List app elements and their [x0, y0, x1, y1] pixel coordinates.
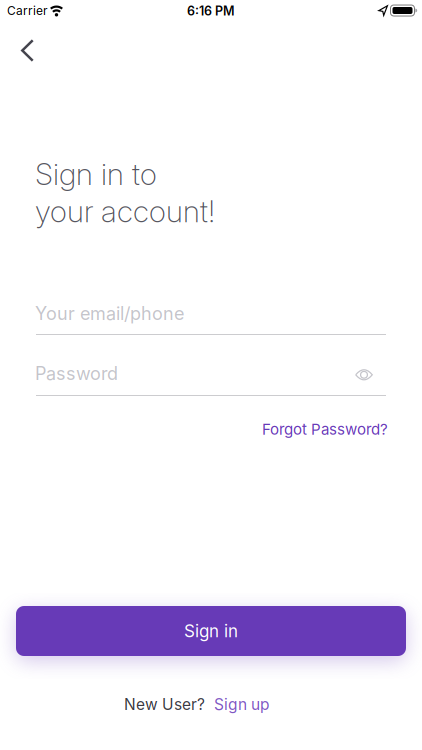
staticText: Sign in [184, 621, 238, 641]
button[interactable]: Back [0, 0, 34, 62]
staticText: 6:16 PM [187, 3, 235, 18]
staticText: Carrier [7, 3, 48, 18]
staticText: your account! [35, 193, 215, 230]
button[interactable]: Show password [355, 368, 373, 382]
staticText: Forgot Password? [262, 420, 388, 438]
staticText: New User? [124, 695, 205, 714]
button[interactable]: Sign up [214, 695, 269, 714]
button[interactable]: Forgot Password? [262, 420, 388, 438]
button[interactable]: Sign in [16, 606, 406, 656]
staticText: Sign in to [35, 156, 157, 192]
staticText: Password [35, 362, 118, 384]
staticText: Sign up [214, 695, 269, 714]
staticText: Your email/phone [35, 302, 184, 324]
